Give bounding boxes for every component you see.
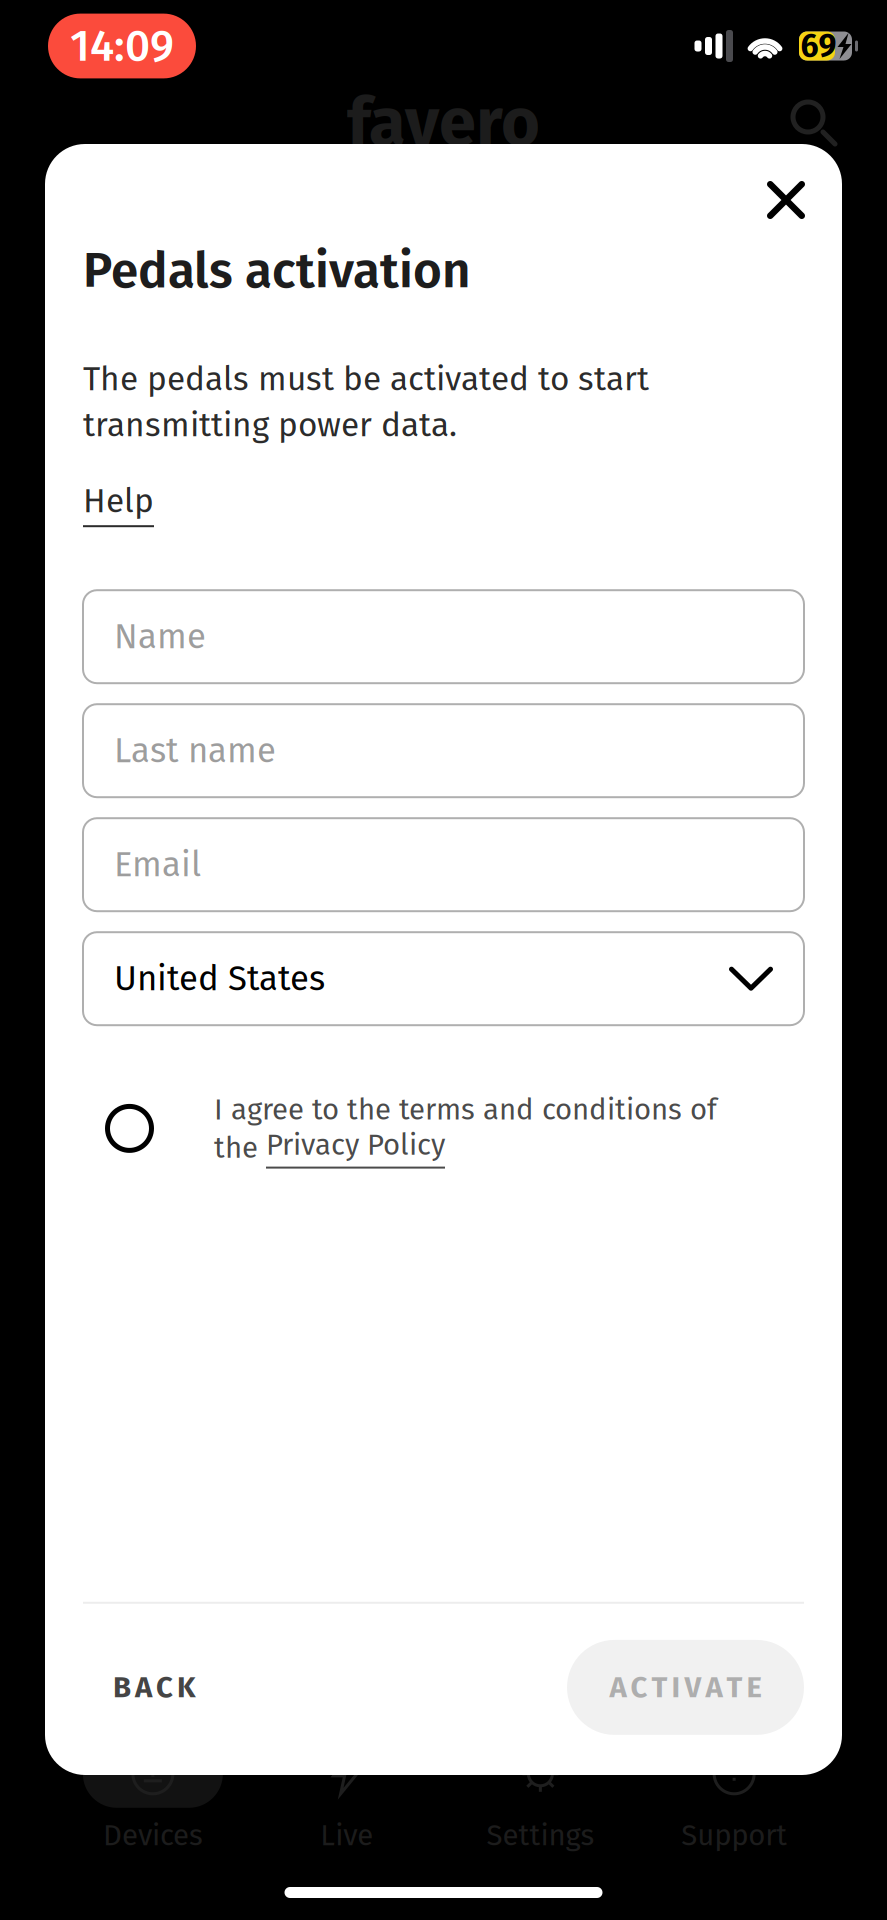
staticText: favero xyxy=(347,83,540,163)
staticText: Privacy Policy xyxy=(266,1127,445,1163)
staticText: 69 xyxy=(800,27,836,65)
staticText: 14:09 xyxy=(70,20,174,72)
staticText: I agree to the terms and conditions of xyxy=(214,1092,717,1127)
button[interactable]: Close xyxy=(741,165,811,235)
staticText: Pedals activation xyxy=(83,241,471,300)
staticText: Live xyxy=(320,1818,373,1853)
staticText: Name xyxy=(114,616,206,657)
staticText: Devices xyxy=(103,1818,203,1853)
button[interactable]: B A C K xyxy=(83,1640,226,1735)
staticText: Support xyxy=(681,1818,787,1853)
button[interactable]: I agree to the terms and conditions of xyxy=(83,1092,804,1169)
button[interactable]: A C T I V A T E xyxy=(567,1640,804,1735)
button[interactable]: Devices xyxy=(56,1740,250,1853)
staticText: United States xyxy=(114,958,325,999)
button[interactable]: Help xyxy=(83,473,154,535)
staticText: Email xyxy=(114,844,201,885)
staticText: A C T I V A T E xyxy=(609,1670,761,1705)
staticText: Last name xyxy=(114,730,276,771)
staticText: Help xyxy=(83,481,154,521)
staticText: B A C K xyxy=(113,1670,196,1705)
button[interactable]: Settings xyxy=(443,1740,637,1853)
staticText: The pedals must be activated to start tr… xyxy=(83,359,649,445)
staticText: the xyxy=(214,1130,266,1166)
button[interactable]: Live xyxy=(250,1740,444,1853)
button[interactable]: Support xyxy=(637,1740,831,1853)
staticText: Settings xyxy=(486,1818,594,1853)
